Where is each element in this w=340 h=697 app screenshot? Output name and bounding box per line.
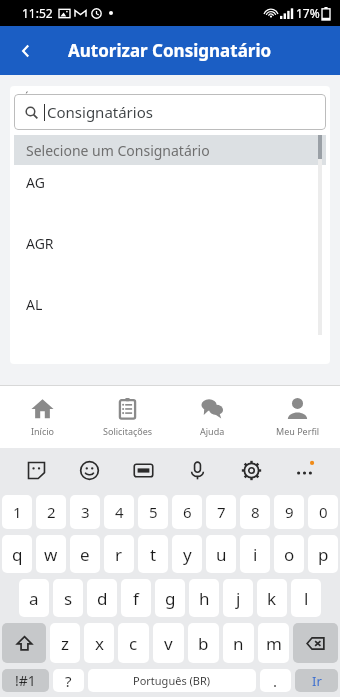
button[interactable]: z <box>50 623 80 663</box>
button[interactable]: Consignatários <box>14 94 326 130</box>
button[interactable]: Voltar <box>4 29 48 73</box>
button[interactable]: AGR <box>14 226 326 287</box>
button[interactable]: a <box>19 579 49 617</box>
button[interactable]: 4 <box>104 495 134 529</box>
staticText: 7 <box>217 502 226 522</box>
staticText: t <box>150 543 157 566</box>
button[interactable]: Figurinhas <box>18 452 54 488</box>
button[interactable]: 7 <box>206 495 236 529</box>
button[interactable]: Emoji <box>71 452 107 488</box>
button[interactable]: f <box>121 579 151 617</box>
button[interactable]: 8 <box>240 495 270 529</box>
button[interactable]: !#1 <box>2 669 49 692</box>
staticText: 4 <box>115 502 124 522</box>
staticText: Autorizar Consignatário <box>68 39 272 62</box>
staticText: Português (BR) <box>133 673 211 688</box>
button[interactable]: Microfone <box>179 452 215 488</box>
button[interactable]: e <box>70 535 100 573</box>
staticText: r <box>115 543 123 566</box>
button[interactable]: GIF <box>125 452 161 488</box>
staticText: q <box>12 543 23 566</box>
button[interactable]: n <box>223 623 254 663</box>
staticText: AGR <box>26 234 54 253</box>
button[interactable]: . <box>260 669 291 692</box>
button[interactable]: Configurações <box>233 452 269 488</box>
staticText: AL <box>26 295 43 314</box>
staticText: s <box>64 587 73 610</box>
staticText: j <box>236 587 241 610</box>
button[interactable]: 5 <box>138 495 168 529</box>
staticText: g <box>165 587 176 610</box>
staticText: Ajuda <box>200 425 225 437</box>
button[interactable]: Mais opções <box>286 452 322 488</box>
button[interactable]: 0 <box>308 495 338 529</box>
staticText: x <box>95 632 104 655</box>
button[interactable]: w <box>36 535 66 573</box>
button[interactable]: i <box>240 535 270 573</box>
staticText: p <box>318 543 329 566</box>
button[interactable]: 9 <box>274 495 304 529</box>
button[interactable]: 1 <box>2 495 32 529</box>
button[interactable]: l <box>291 579 321 617</box>
staticText: !#1 <box>15 671 36 690</box>
staticText: i <box>253 543 258 566</box>
button[interactable]: p <box>308 535 338 573</box>
button[interactable]: t <box>138 535 168 573</box>
button[interactable]: s <box>53 579 83 617</box>
staticText: 0 <box>319 502 328 522</box>
button[interactable]: h <box>189 579 219 617</box>
staticText: . <box>273 671 278 691</box>
button[interactable]: o <box>274 535 304 573</box>
button[interactable]: Selecione um Consignatário <box>14 135 326 165</box>
button[interactable]: v <box>153 623 184 663</box>
staticText: l <box>304 587 309 610</box>
staticText: z <box>61 632 69 655</box>
button[interactable]: AG <box>14 165 326 226</box>
staticText: Solicitações <box>103 425 153 437</box>
button[interactable]: x <box>84 623 114 663</box>
button[interactable]: u <box>206 535 236 573</box>
button[interactable]: Início <box>0 386 85 448</box>
staticText: 11:52 <box>22 5 53 21</box>
button[interactable]: 2 <box>36 495 66 529</box>
staticText: w <box>44 543 58 566</box>
button[interactable]: Ajuda <box>170 386 255 448</box>
staticText: k <box>267 587 277 610</box>
staticText: Órgão - Uorg - Matrícula <box>22 90 148 105</box>
button[interactable]: Tecla <box>293 623 338 663</box>
staticText: c <box>129 632 138 655</box>
staticText: Consignatários <box>47 102 153 122</box>
button[interactable]: m <box>258 623 289 663</box>
staticText: y <box>183 543 192 566</box>
staticText: 1 <box>13 502 22 522</box>
button[interactable]: g <box>155 579 185 617</box>
button[interactable]: Meu Perfil <box>255 386 340 448</box>
button[interactable]: Tecla <box>2 623 46 663</box>
button[interactable]: 3 <box>70 495 100 529</box>
staticText: 2 <box>47 502 56 522</box>
button[interactable]: Português (BR) <box>88 669 256 692</box>
button[interactable]: AL <box>14 287 326 335</box>
button[interactable]: Ir <box>295 669 338 692</box>
staticText: e <box>80 543 90 566</box>
staticText: Selecione um Consignatário <box>26 141 210 160</box>
button[interactable]: y <box>172 535 202 573</box>
staticText: 5 <box>149 502 158 522</box>
button[interactable]: r <box>104 535 134 573</box>
button[interactable]: q <box>2 535 32 573</box>
staticText: v <box>164 632 173 655</box>
staticText: Início <box>31 425 55 437</box>
button[interactable]: c <box>118 623 149 663</box>
staticText: 6 <box>183 502 192 522</box>
staticText: d <box>97 587 108 610</box>
button[interactable]: k <box>257 579 287 617</box>
button[interactable]: d <box>87 579 117 617</box>
button[interactable]: Solicitações <box>85 386 170 448</box>
button[interactable]: ? <box>53 669 84 692</box>
staticText: Ir <box>312 672 322 690</box>
staticText: 8 <box>251 502 260 522</box>
staticText: n <box>233 632 244 655</box>
button[interactable]: 6 <box>172 495 202 529</box>
button[interactable]: b <box>188 623 219 663</box>
button[interactable]: j <box>223 579 253 617</box>
